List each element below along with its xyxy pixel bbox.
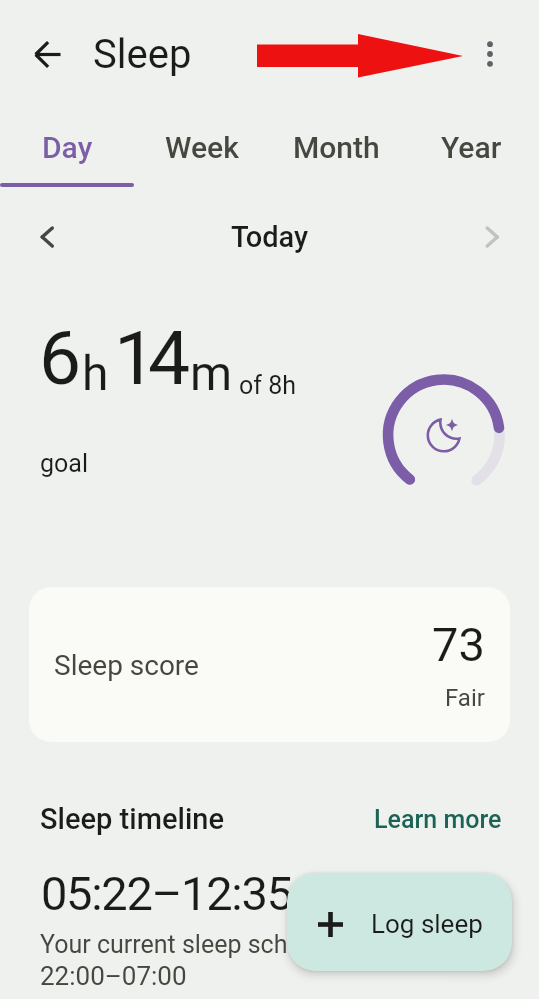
staticText: Your current sleep schedule is xyxy=(40,930,374,959)
staticText: m xyxy=(190,345,233,401)
staticText: of 8h xyxy=(239,371,296,400)
staticText: 73 xyxy=(432,617,485,672)
staticText: goal xyxy=(40,449,88,478)
staticText: Fair xyxy=(445,684,485,712)
staticText: Day xyxy=(42,130,93,165)
button[interactable]: Previous day xyxy=(12,202,82,272)
staticText: 6 xyxy=(39,314,82,402)
button[interactable]: Next day xyxy=(457,202,527,272)
staticText: h xyxy=(82,345,109,401)
button[interactable]: Sleep score xyxy=(29,587,510,742)
staticText: Week xyxy=(165,130,239,165)
button[interactable]: Log sleep xyxy=(287,873,512,971)
button[interactable]: Day xyxy=(0,111,134,188)
staticText: Log sleep xyxy=(371,909,483,939)
staticText: Learn more xyxy=(374,805,502,834)
staticText: Sleep score xyxy=(54,649,199,682)
staticText: Today xyxy=(231,220,309,254)
staticText: 22:00–07:00 xyxy=(40,961,187,991)
button[interactable]: Week xyxy=(134,111,269,188)
staticText: Month xyxy=(293,130,380,165)
staticText: 05:22–12:35 xyxy=(41,866,292,921)
staticText: 1 xyxy=(114,314,157,402)
button[interactable]: Year xyxy=(404,111,539,188)
button[interactable]: More options xyxy=(454,18,526,90)
staticText: Sleep timeline xyxy=(40,802,225,836)
button[interactable]: Month xyxy=(269,111,404,188)
staticText: Sleep xyxy=(93,31,192,78)
button[interactable]: Learn more xyxy=(374,801,502,830)
staticText: 4 xyxy=(148,314,191,402)
staticText: Year xyxy=(441,130,502,165)
button[interactable]: Back xyxy=(11,18,83,90)
